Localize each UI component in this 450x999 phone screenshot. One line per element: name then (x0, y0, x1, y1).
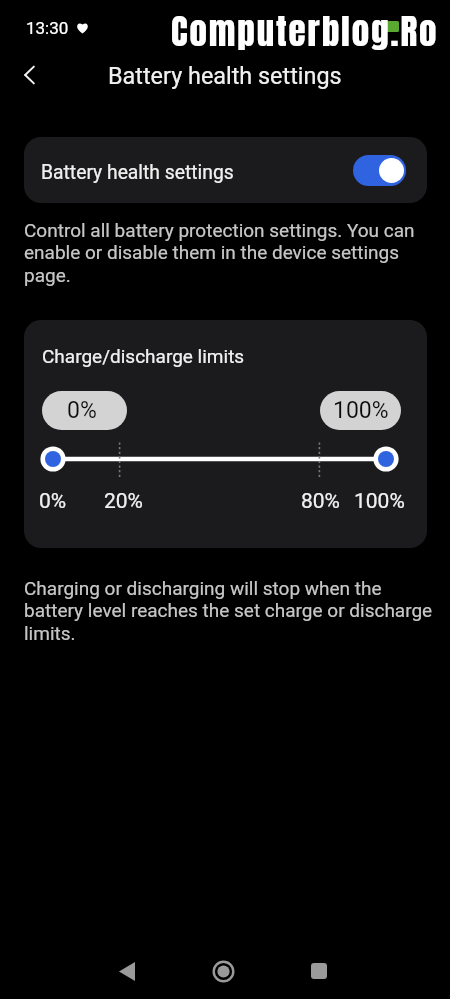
button[interactable]: Back (103, 947, 151, 995)
staticText: Control all battery protection settings.… (24, 219, 432, 287)
staticText: 0% (39, 489, 67, 514)
staticText: Charge/discharge limits (42, 345, 245, 367)
button[interactable]: Home (199, 947, 247, 995)
staticText: Battery health settings (41, 161, 234, 184)
button[interactable]: 100% (320, 391, 401, 430)
staticText: 100% (333, 397, 389, 424)
staticText: Computerblog.Ro (171, 5, 439, 57)
button[interactable]: Recents (295, 947, 343, 995)
staticText: Battery health settings (108, 62, 342, 89)
staticText: Charging or discharging will stop when t… (24, 577, 440, 645)
button[interactable]: Back (9, 54, 51, 96)
staticText: 13:30 (26, 18, 69, 38)
staticText: 100% (354, 489, 405, 514)
staticText: 80% (301, 489, 340, 514)
staticText: 0% (67, 397, 97, 424)
staticText: 20% (104, 489, 143, 514)
button[interactable]: 0% (42, 391, 127, 430)
button[interactable]: Battery health settings (24, 137, 427, 203)
